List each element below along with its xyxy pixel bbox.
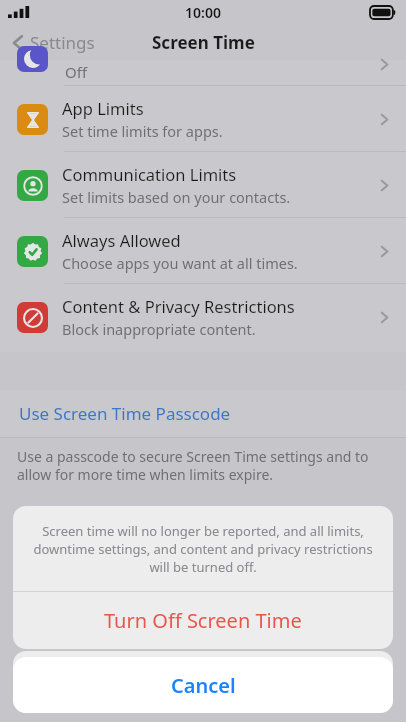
button[interactable]: Settings (8, 27, 99, 58)
button[interactable]: App Limits (0, 86, 406, 152)
staticText: Screen time will no longer be reported, … (33, 522, 373, 576)
staticText: Content & Privacy Restrictions (62, 295, 295, 317)
button[interactable]: Turn Off Screen Time (13, 592, 393, 649)
staticText: 10:00 (185, 3, 221, 22)
staticText: Cancel (171, 672, 236, 699)
staticText: Communication Limits (62, 163, 237, 185)
staticText: App Limits (62, 97, 144, 119)
staticText: Block inappropriate content. (62, 319, 256, 339)
staticText: Screen Time (152, 31, 255, 54)
staticText: Set time limits for apps. (62, 121, 223, 141)
staticText: Set limits based on your contacts. (62, 187, 291, 207)
staticText: Choose apps you want at all times. (62, 253, 298, 273)
button[interactable]: Cancel (13, 657, 393, 713)
staticText: Use Screen Time Passcode (19, 402, 231, 425)
button[interactable]: Always Allowed (0, 218, 406, 284)
staticText: Always Allowed (62, 229, 181, 251)
staticText: Settings (30, 31, 95, 54)
button[interactable]: Use Screen Time Passcode (0, 390, 406, 437)
button[interactable]: Communication Limits (0, 152, 406, 218)
staticText: Use a passcode to secure Screen Time set… (17, 447, 384, 484)
staticText: Off (65, 62, 88, 82)
button[interactable]: Content & Privacy Restrictions (0, 284, 406, 350)
staticText: Turn Off Screen Time (104, 653, 302, 680)
button[interactable]: Off (0, 60, 406, 86)
staticText: Turn Off Screen Time (104, 607, 302, 634)
